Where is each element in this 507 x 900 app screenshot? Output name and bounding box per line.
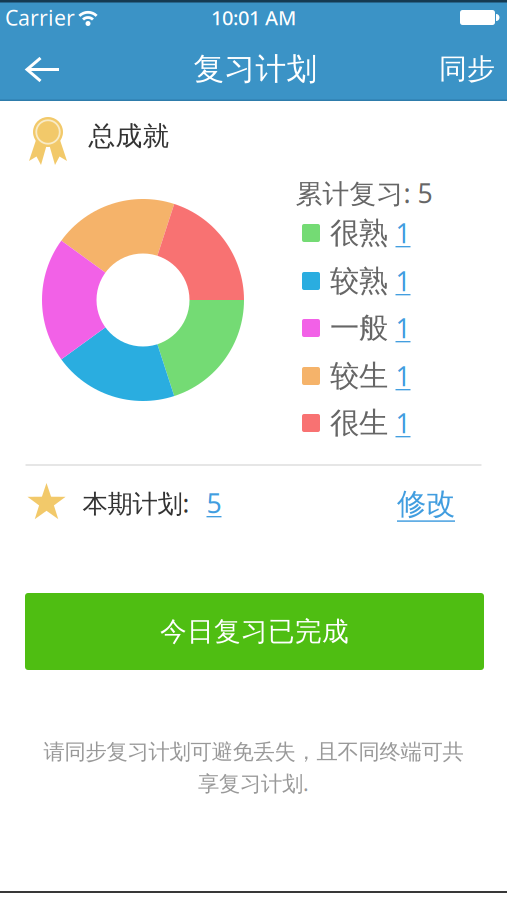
staticText: 1	[395, 358, 410, 394]
staticText: 较熟	[330, 263, 388, 299]
staticText: 同步	[439, 52, 495, 86]
button[interactable]: 1	[395, 405, 410, 441]
staticText: 复习计划	[193, 50, 317, 88]
staticText: 享复习计划.	[198, 769, 309, 797]
staticText: 本期计划:	[82, 486, 189, 520]
button[interactable]: 1	[395, 263, 410, 299]
staticText: 今日复习已完成	[160, 615, 349, 648]
staticText: 10:01 AM	[211, 4, 296, 31]
staticText: 1	[395, 263, 410, 299]
staticText: 请同步复习计划可避免丢失，且不同终端可共	[43, 739, 463, 765]
staticText: 修改	[397, 486, 455, 522]
button[interactable]: 1	[395, 310, 410, 346]
staticText: 很生	[330, 405, 388, 441]
button[interactable]: 同步	[439, 52, 495, 86]
button[interactable]: Back	[25, 56, 61, 82]
staticText: 1	[395, 215, 410, 251]
staticText: 1	[395, 310, 410, 346]
button[interactable]: 5	[206, 485, 221, 521]
staticText: 5	[206, 485, 221, 521]
staticText: 较生	[330, 358, 388, 394]
staticText: 1	[395, 405, 410, 441]
staticText: 一般	[330, 310, 388, 346]
button[interactable]: 1	[395, 358, 410, 394]
staticText: Carrier	[5, 3, 75, 32]
staticText: 总成就	[88, 120, 169, 152]
button[interactable]: 修改	[397, 486, 455, 522]
button[interactable]: 1	[395, 215, 410, 251]
staticText: 很熟	[330, 215, 388, 251]
button[interactable]: 今日复习已完成	[25, 593, 484, 670]
staticText: 累计复习: 5	[295, 175, 432, 211]
